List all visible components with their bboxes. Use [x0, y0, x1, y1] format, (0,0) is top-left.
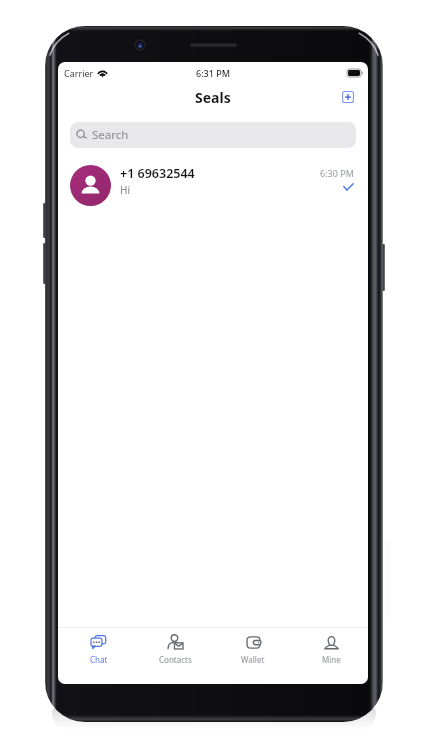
staticText: Hi: [120, 183, 130, 197]
staticText: Search: [92, 127, 129, 143]
button[interactable]: +1 69632544: [58, 158, 368, 210]
staticText: Mine: [322, 654, 341, 665]
staticText: Carrier: [64, 67, 94, 79]
button[interactable]: New chat: [337, 86, 359, 108]
button[interactable]: Mine: [292, 628, 368, 684]
staticText: 6:31 PM: [196, 67, 230, 79]
button[interactable]: Contacts: [137, 628, 214, 684]
staticText: +1 69632544: [120, 165, 195, 182]
staticText: Wallet: [241, 654, 265, 665]
staticText: Chat: [90, 654, 108, 665]
button[interactable]: Chat: [60, 628, 137, 684]
staticText: Seals: [195, 88, 231, 107]
button[interactable]: Wallet: [214, 628, 292, 684]
staticText: Contacts: [159, 654, 192, 665]
staticText: 6:30 PM: [320, 167, 354, 179]
button[interactable]: Search: [70, 122, 356, 148]
